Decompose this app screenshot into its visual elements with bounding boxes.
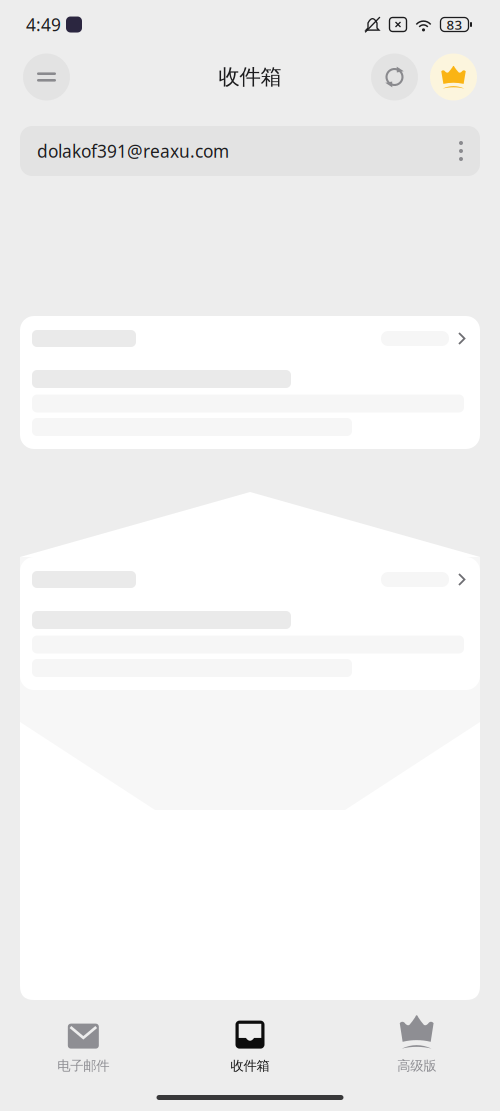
- staticText: 4:49: [26, 13, 61, 36]
- staticText: dolakof391@reaxu.com: [37, 139, 229, 162]
- staticText: 收件箱: [218, 64, 281, 90]
- staticText: 83: [446, 16, 462, 33]
- button[interactable]: dolakof391@reaxu.com: [20, 126, 480, 176]
- staticText: 收件箱: [230, 1058, 269, 1074]
- staticText: 高级版: [397, 1058, 436, 1074]
- button[interactable]: Premium: [430, 53, 477, 100]
- button[interactable]: Menu: [23, 53, 70, 100]
- staticText: 电子邮件: [57, 1058, 109, 1074]
- button[interactable]: 电子邮件: [0, 1016, 167, 1074]
- button[interactable]: Refresh: [371, 53, 418, 100]
- button[interactable]: 收件箱: [167, 1016, 333, 1074]
- button[interactable]: 高级版: [333, 1016, 500, 1074]
